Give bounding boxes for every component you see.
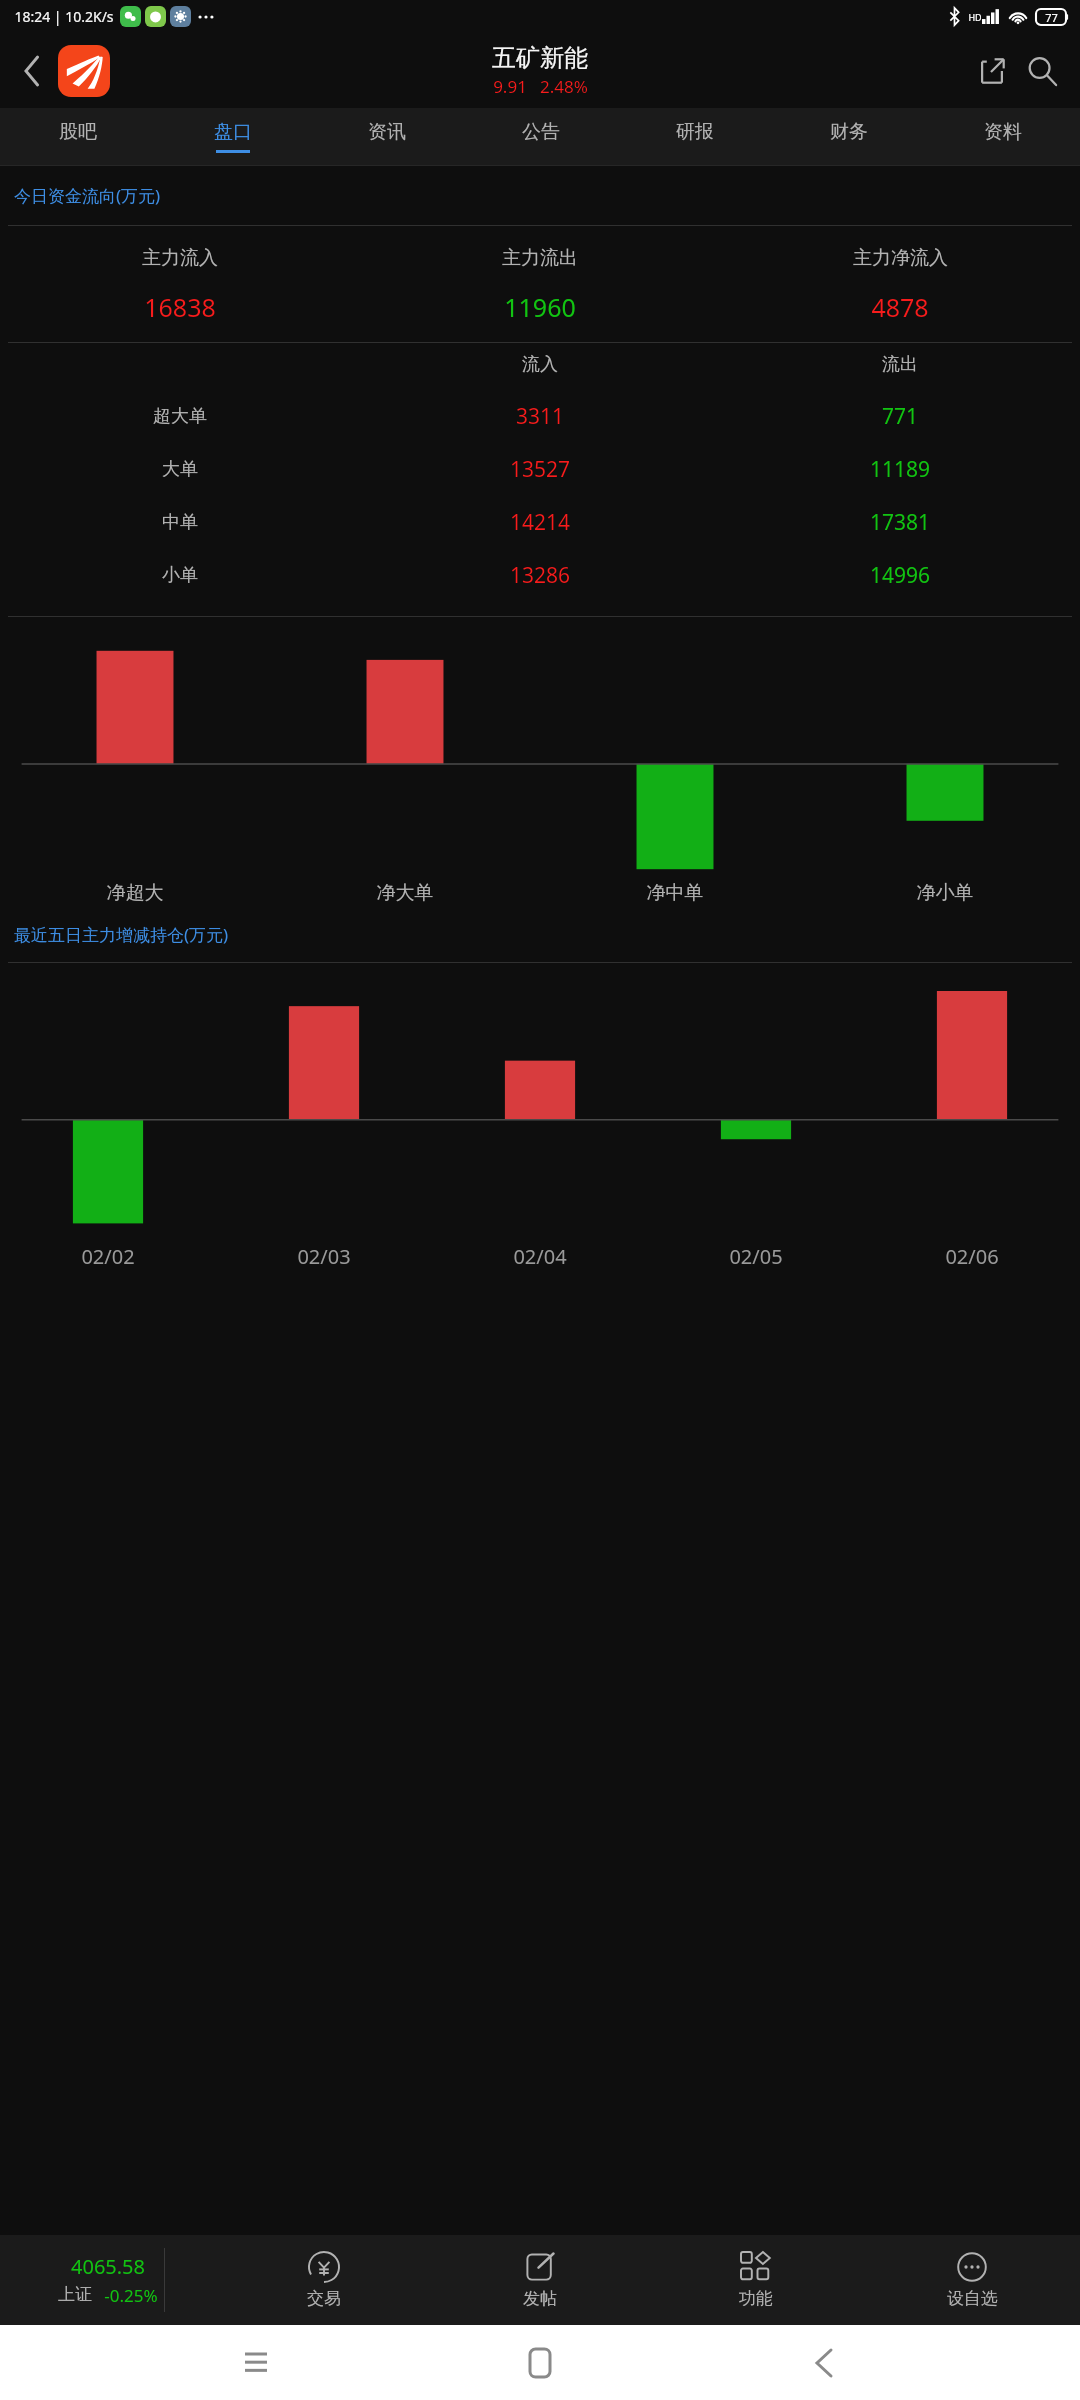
staticText: 净超大 [0, 881, 270, 905]
staticText: 16838 [144, 290, 216, 324]
button[interactable]: Share [968, 47, 1016, 95]
staticText: 资讯 [368, 120, 406, 144]
button[interactable]: 资料 [926, 108, 1080, 165]
staticText: 14214 [360, 508, 720, 537]
staticText: 02/06 [864, 1243, 1080, 1270]
button[interactable]: 发帖 [432, 2235, 648, 2325]
staticText: 02/03 [216, 1243, 432, 1270]
staticText: 14996 [720, 561, 1080, 590]
staticText: 净中单 [540, 881, 810, 905]
staticText: 交易 [307, 2288, 341, 2309]
button[interactable]: 设自选 [864, 2235, 1080, 2325]
staticText: 小单 [0, 564, 360, 587]
staticText: 今日资金流向(万元) [14, 184, 161, 207]
staticText: 11960 [504, 290, 576, 324]
staticText: 功能 [739, 2288, 773, 2309]
button[interactable]: 研报 [618, 108, 772, 165]
staticText: 资料 [984, 120, 1022, 144]
staticText: 净大单 [270, 881, 540, 905]
staticText: 主力净流入 [853, 246, 948, 270]
button[interactable]: 4065.58 [0, 2235, 216, 2325]
staticText: 超大单 [0, 405, 360, 428]
staticText: 流出 [720, 353, 1080, 376]
button[interactable]: Back [796, 2335, 852, 2391]
staticText: 股吧 [59, 120, 97, 144]
staticText: 净小单 [810, 881, 1080, 905]
staticText: 研报 [676, 120, 714, 144]
button[interactable]: 股吧 [0, 108, 155, 165]
staticText: 4878 [871, 290, 929, 324]
staticText: HD [968, 11, 982, 23]
staticText: 02/04 [432, 1243, 648, 1270]
button[interactable]: 交易 [216, 2235, 432, 2325]
staticText: 02/02 [0, 1243, 216, 1270]
staticText: 2.48% [540, 75, 588, 98]
staticText: 五矿新能 [492, 43, 588, 73]
staticText: 主力流入 [142, 246, 218, 270]
button[interactable]: 盘口 [155, 108, 310, 165]
staticText: 13286 [360, 561, 720, 590]
staticText: 公告 [522, 120, 560, 144]
staticText: 上证 [58, 2284, 92, 2305]
staticText: 财务 [830, 120, 868, 144]
staticText: 18:24 | 10.2K/s [14, 7, 114, 26]
staticText: 17381 [720, 508, 1080, 537]
button[interactable]: 财务 [772, 108, 926, 165]
staticText: 11189 [720, 455, 1080, 484]
staticText: 流入 [360, 353, 720, 376]
button[interactable]: App logo [58, 45, 110, 97]
staticText: 盘口 [214, 120, 252, 144]
staticText: 77 [1045, 10, 1058, 25]
button[interactable]: Home [512, 2335, 568, 2391]
staticText: 4065.58 [71, 2253, 145, 2280]
staticText: 中单 [0, 511, 360, 534]
staticText: 02/05 [648, 1243, 864, 1270]
button[interactable]: Recents [228, 2335, 284, 2391]
staticText: 9.91 [493, 75, 527, 98]
button[interactable]: Search [1016, 45, 1068, 97]
button[interactable]: 资讯 [310, 108, 464, 165]
staticText: 发帖 [523, 2288, 557, 2309]
staticText: 设自选 [947, 2288, 998, 2309]
staticText: -0.25% [104, 2284, 158, 2307]
staticText: 771 [720, 402, 1080, 431]
button[interactable]: Back [10, 49, 54, 93]
staticText: 3311 [360, 402, 720, 431]
staticText: 13527 [360, 455, 720, 484]
staticText: 最近五日主力增减持仓(万元) [14, 923, 229, 946]
staticText: 大单 [0, 458, 360, 481]
button[interactable]: 功能 [648, 2235, 864, 2325]
staticText: 主力流出 [502, 246, 578, 270]
button[interactable]: 公告 [464, 108, 618, 165]
